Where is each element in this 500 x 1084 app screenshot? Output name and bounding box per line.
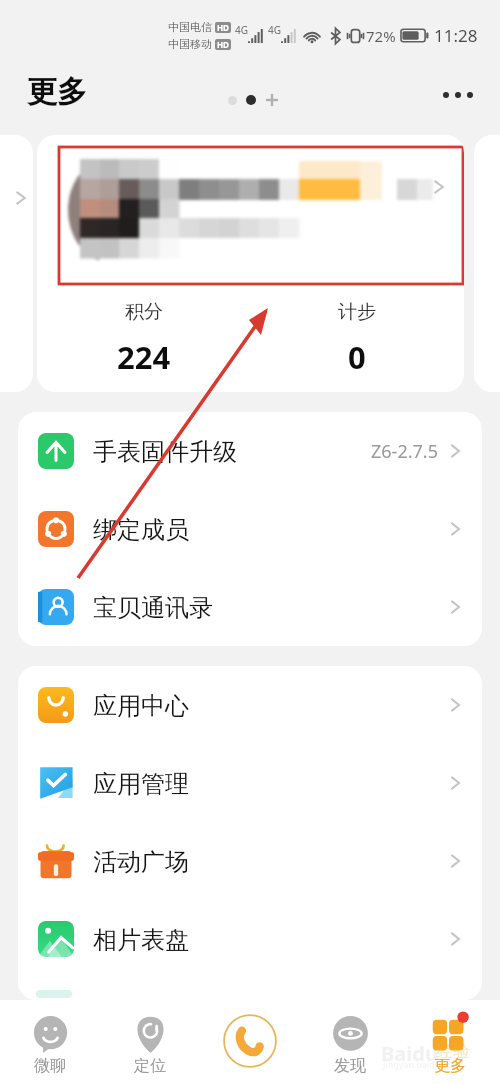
- button[interactable]: 定位: [100, 1000, 200, 1084]
- button[interactable]: 积分: [37, 285, 250, 392]
- staticText: 宝贝通讯录: [93, 593, 213, 623]
- button[interactable]: 发现: [300, 1000, 400, 1084]
- staticText: jingyan.baidu.com: [383, 1058, 461, 1070]
- staticText: 224: [117, 336, 171, 378]
- staticText: 72%: [366, 26, 396, 46]
- button[interactable]: 应用中心: [18, 666, 482, 744]
- staticText: Baidu: [381, 1040, 438, 1067]
- button[interactable]: Profile: [37, 135, 464, 285]
- staticText: 0: [348, 336, 366, 378]
- staticText: 4G: [235, 23, 248, 37]
- button[interactable]: 微聊: [0, 1000, 100, 1084]
- button[interactable]: 计步: [250, 285, 464, 392]
- staticText: 绑定成员: [93, 515, 189, 545]
- button[interactable]: More options: [436, 82, 480, 108]
- staticText: 定位: [134, 1056, 166, 1076]
- staticText: 11:28: [434, 24, 478, 47]
- button[interactable]: 活动广场: [18, 822, 482, 900]
- staticText: 中国电信: [168, 20, 212, 34]
- staticText: Z6-2.7.5: [371, 439, 438, 464]
- staticText: 4G: [268, 23, 281, 37]
- staticText: 中国移动: [168, 37, 212, 51]
- staticText: 应用管理: [93, 769, 189, 799]
- staticText: 发现: [334, 1056, 366, 1076]
- button[interactable]: Call: [200, 1000, 300, 1084]
- staticText: 经验: [436, 1041, 470, 1062]
- staticText: 更多: [434, 1056, 466, 1076]
- staticText: HD: [217, 39, 229, 50]
- button[interactable]: 宝贝通讯录: [18, 568, 482, 646]
- staticText: 相片表盘: [93, 925, 189, 955]
- staticText: 应用中心: [93, 691, 189, 721]
- staticText: 更多: [27, 73, 87, 111]
- button[interactable]: 更多: [400, 1000, 500, 1084]
- button[interactable]: 应用管理: [18, 744, 482, 822]
- button[interactable]: 绑定成员: [18, 490, 482, 568]
- staticText: HD: [217, 22, 229, 33]
- button[interactable]: 手表固件升级: [18, 412, 482, 490]
- staticText: 积分: [125, 300, 163, 324]
- staticText: 活动广场: [93, 847, 189, 877]
- button[interactable]: 相片表盘: [18, 900, 482, 978]
- staticText: 微聊: [34, 1056, 66, 1076]
- staticText: 手表固件升级: [93, 437, 237, 467]
- staticText: 计步: [338, 300, 376, 324]
